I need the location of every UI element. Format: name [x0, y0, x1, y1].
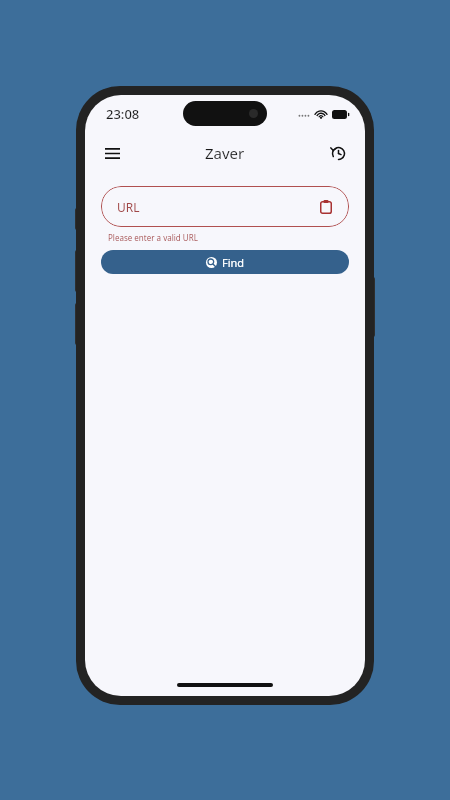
- button[interactable]: History: [321, 136, 355, 170]
- button[interactable]: Menu: [95, 136, 129, 170]
- button[interactable]: Find: [101, 250, 349, 274]
- staticText: Please enter a valid URL: [108, 232, 198, 243]
- staticText: Find: [222, 255, 245, 270]
- staticText: Zaver: [205, 143, 245, 163]
- staticText: URL: [117, 199, 140, 215]
- staticText: 23:08: [106, 105, 140, 123]
- button[interactable]: URL: [101, 186, 349, 227]
- button[interactable]: Paste from clipboard: [313, 194, 339, 220]
